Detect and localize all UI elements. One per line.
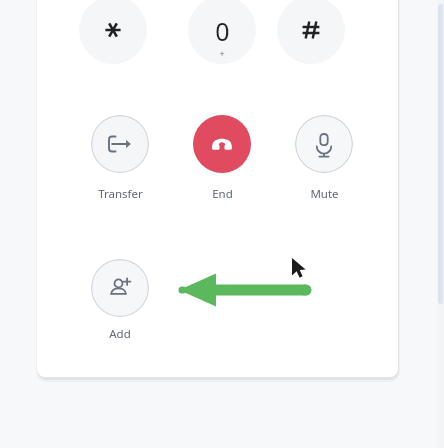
staticText: + — [219, 47, 225, 59]
button[interactable]: Zero plus — [188, 0, 256, 64]
button[interactable]: Star — [79, 0, 147, 64]
staticText: Mute — [310, 186, 339, 202]
staticText: End — [212, 186, 233, 202]
staticText: Transfer — [98, 186, 143, 202]
button[interactable]: Add call — [91, 259, 149, 317]
button[interactable]: Pound — [277, 0, 345, 64]
staticText: 0 — [215, 14, 230, 48]
staticText: Add — [109, 326, 131, 342]
button[interactable]: Mute — [295, 115, 353, 173]
button[interactable]: Transfer — [91, 115, 149, 173]
button[interactable]: End call — [193, 115, 251, 173]
